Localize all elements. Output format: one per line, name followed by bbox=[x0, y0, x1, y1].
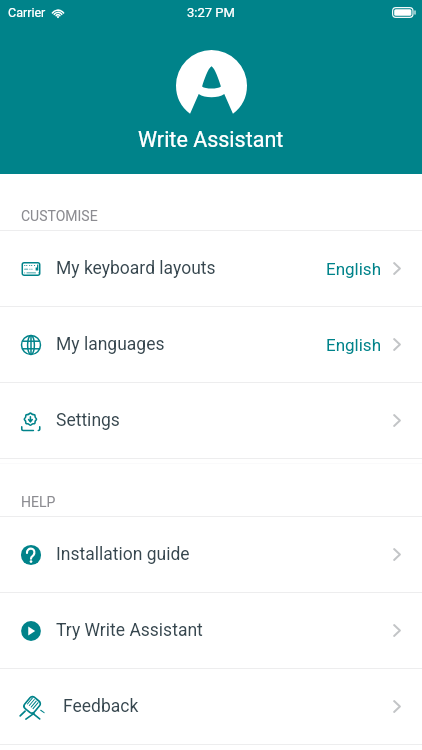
other: Keyboard layouts bbox=[19, 257, 43, 281]
staticText: Feedback bbox=[63, 696, 139, 717]
staticText: HELP bbox=[21, 494, 56, 510]
staticText: CUSTOMISE bbox=[21, 208, 98, 224]
staticText: English bbox=[326, 335, 382, 355]
staticText: Installation guide bbox=[56, 544, 190, 565]
button[interactable]: Languages bbox=[0, 307, 422, 382]
staticText: Carrier bbox=[8, 5, 46, 20]
button[interactable]: Feedback bbox=[0, 669, 422, 744]
other: Help bbox=[19, 543, 43, 567]
button[interactable]: Help bbox=[0, 517, 422, 592]
other: Settings bbox=[19, 409, 43, 433]
staticText: English bbox=[326, 259, 382, 279]
button[interactable]: Play bbox=[0, 593, 422, 668]
staticText: My languages bbox=[56, 334, 165, 355]
staticText: Write Assistant bbox=[138, 127, 284, 152]
button[interactable]: Settings bbox=[0, 383, 422, 458]
other: Play bbox=[19, 619, 43, 643]
staticText: My keyboard layouts bbox=[56, 258, 216, 279]
button[interactable]: Keyboard layouts bbox=[0, 231, 422, 306]
other: Feedback bbox=[19, 694, 45, 720]
other: Languages bbox=[19, 333, 43, 357]
staticText: Try Write Assistant bbox=[56, 620, 203, 641]
staticText: 3:27 PM bbox=[187, 5, 235, 20]
staticText: Settings bbox=[56, 410, 120, 431]
